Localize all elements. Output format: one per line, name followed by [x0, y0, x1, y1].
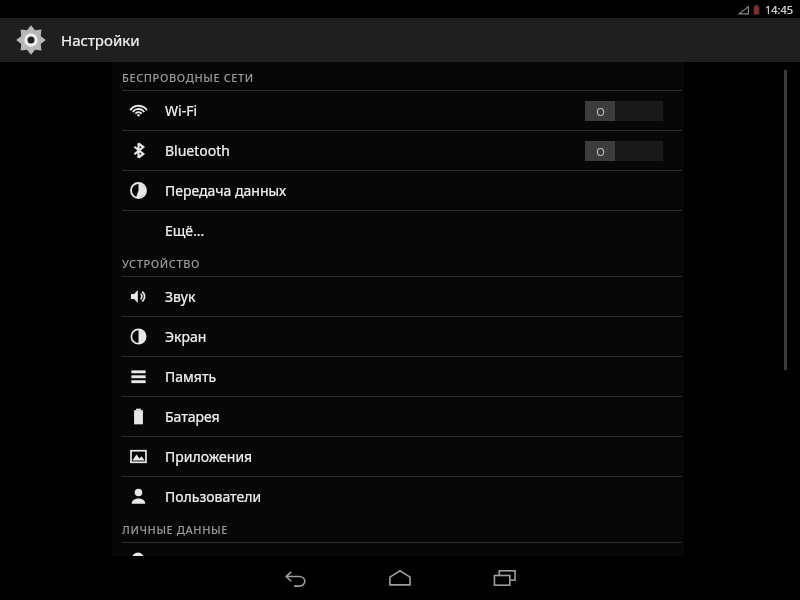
staticText: Передача данных	[165, 181, 287, 200]
staticText: БЕСПРОВОДНЫЕ СЕТИ	[122, 70, 254, 85]
staticText: Wi-Fi	[165, 101, 198, 120]
staticText: УСТРОЙСТВО	[122, 256, 201, 271]
button[interactable]: Звук	[112, 277, 684, 316]
button[interactable]	[0, 543, 800, 559]
button[interactable]: Bluetooth	[112, 131, 684, 170]
button[interactable]: Recent apps	[485, 564, 525, 592]
button[interactable]: Передача данных	[112, 171, 684, 210]
staticText: O	[596, 144, 605, 159]
button[interactable]: Приложения	[112, 437, 684, 476]
staticText: 14:45	[765, 2, 794, 17]
button[interactable]: Батарея	[112, 397, 684, 436]
button[interactable]: Пользователи	[112, 477, 684, 516]
button[interactable]: Wi-Fi	[112, 91, 684, 130]
staticText: O	[596, 104, 605, 119]
staticText: Батарея	[165, 407, 220, 426]
staticText: Экран	[165, 327, 207, 346]
staticText: Настройки	[61, 30, 140, 50]
staticText: Звук	[165, 287, 196, 306]
staticText: Память	[165, 367, 217, 386]
staticText: Пользователи	[165, 487, 262, 506]
button[interactable]: Back	[276, 564, 316, 592]
button[interactable]: Ещё...	[112, 211, 684, 250]
staticText: Ещё...	[165, 221, 205, 240]
staticText: Bluetooth	[165, 141, 230, 160]
button[interactable]: Home	[380, 564, 420, 592]
staticText: ЛИЧНЫЕ ДАННЫЕ	[122, 522, 228, 537]
staticText: Приложения	[165, 447, 253, 466]
button[interactable]: Экран	[112, 317, 684, 356]
button[interactable]: Память	[112, 357, 684, 396]
button[interactable]: Settings	[13, 22, 49, 58]
